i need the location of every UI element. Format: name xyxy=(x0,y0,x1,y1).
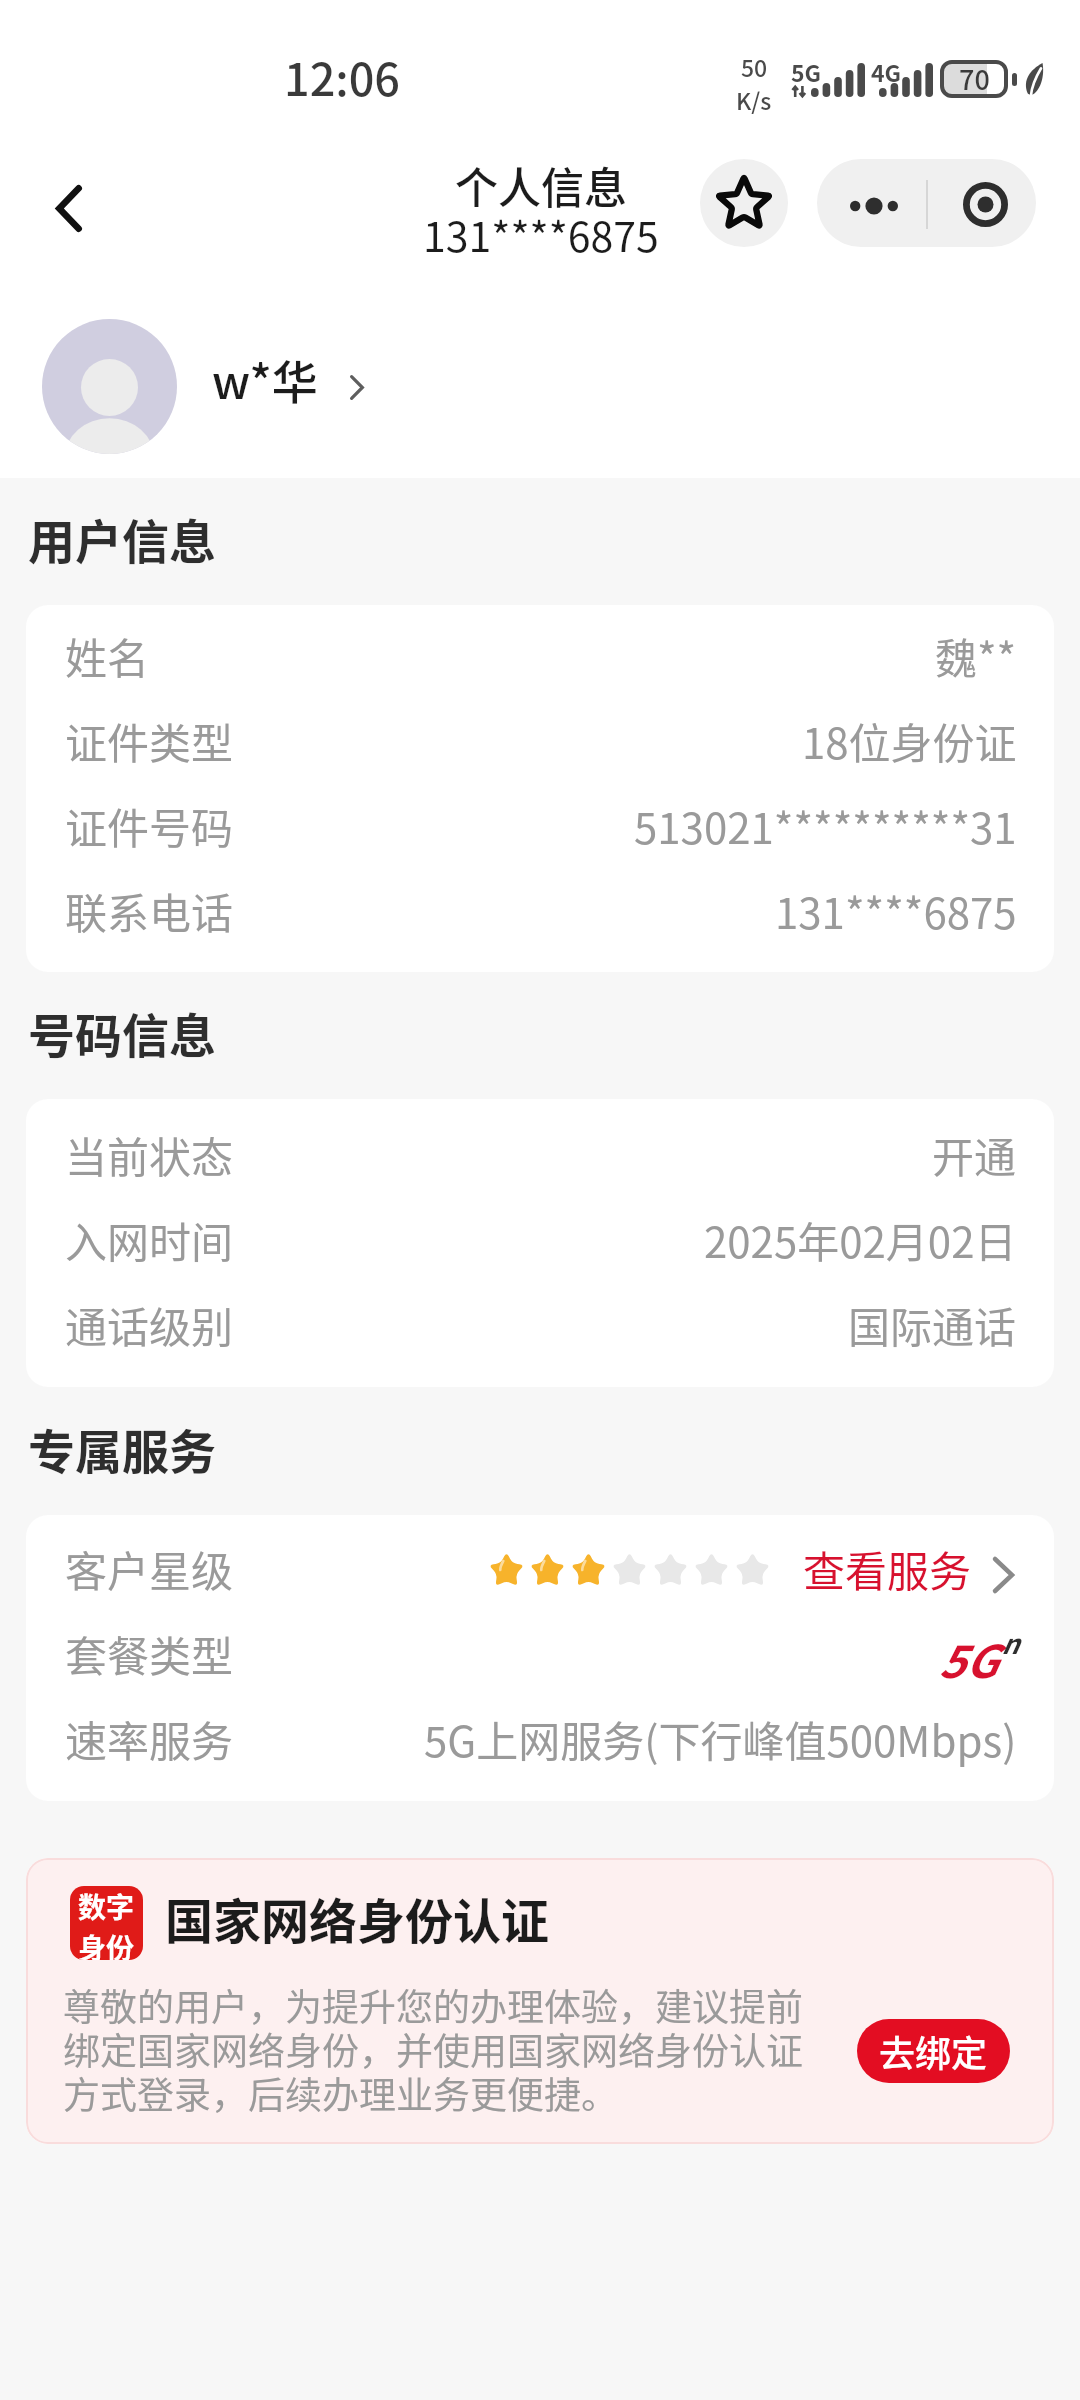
staticText: 速率服务 xyxy=(65,1708,234,1769)
staticText: 去绑定 xyxy=(879,2025,988,2077)
staticText: 开通 xyxy=(932,1124,1017,1185)
staticText: 入网时间 xyxy=(65,1209,234,1270)
staticText: 4G xyxy=(871,55,902,88)
staticText: 号码信息 xyxy=(28,998,216,1066)
staticText: 姓名 xyxy=(65,625,150,686)
staticText: 2025年02月02日 xyxy=(704,1209,1017,1270)
staticText: 魏** xyxy=(935,625,1017,686)
staticText: 70 xyxy=(959,59,990,97)
staticText: 5G上网服务(下行峰值500Mbps) xyxy=(424,1708,1017,1769)
staticText: 18位身份证 xyxy=(802,710,1017,771)
staticText: 12:06 xyxy=(284,44,401,109)
button[interactable]: Close xyxy=(928,159,1036,247)
staticText: 通话级别 xyxy=(65,1294,234,1355)
staticText: 个人信息 xyxy=(455,154,627,216)
staticText: 50 xyxy=(741,50,768,83)
staticText: 131****6875 xyxy=(775,880,1017,941)
staticText: 客户星级 xyxy=(65,1538,234,1599)
staticText: 用户信息 xyxy=(28,504,216,572)
staticText: 专属服务 xyxy=(28,1414,216,1482)
staticText: 数字 xyxy=(78,1886,135,1927)
button[interactable]: 客户星级 xyxy=(65,1526,1014,1611)
staticText: n xyxy=(1001,1623,1019,1662)
staticText: 证件类型 xyxy=(65,710,234,771)
staticText: 5G xyxy=(791,55,822,88)
staticText: 5G xyxy=(938,1626,997,1691)
staticText: 证件号码 xyxy=(65,795,234,856)
button[interactable]: More options xyxy=(817,159,926,247)
button[interactable]: 去绑定 xyxy=(857,2019,1010,2083)
staticText: 131****6875 xyxy=(423,204,659,263)
button[interactable]: Back xyxy=(16,152,124,262)
button[interactable]: w*华 xyxy=(42,319,382,454)
staticText: K/s xyxy=(736,83,772,116)
staticText: 国家网络身份认证 xyxy=(165,1883,550,1953)
staticText: 身份 xyxy=(78,1927,135,1960)
staticText: 尊敬的用户，为提升您的办理体验，建议提前绑定国家网络身份，并使用国家网络身份认证… xyxy=(63,1978,819,2120)
staticText: 当前状态 xyxy=(65,1124,234,1185)
button[interactable]: Favorite xyxy=(700,159,788,247)
staticText: 套餐类型 xyxy=(65,1623,234,1684)
staticText: 国际通话 xyxy=(848,1294,1017,1355)
staticText: 联系电话 xyxy=(65,880,234,941)
staticText: 查看服务 xyxy=(803,1538,972,1599)
staticText: w*华 xyxy=(212,346,318,413)
staticText: 513021**********31 xyxy=(634,795,1017,856)
